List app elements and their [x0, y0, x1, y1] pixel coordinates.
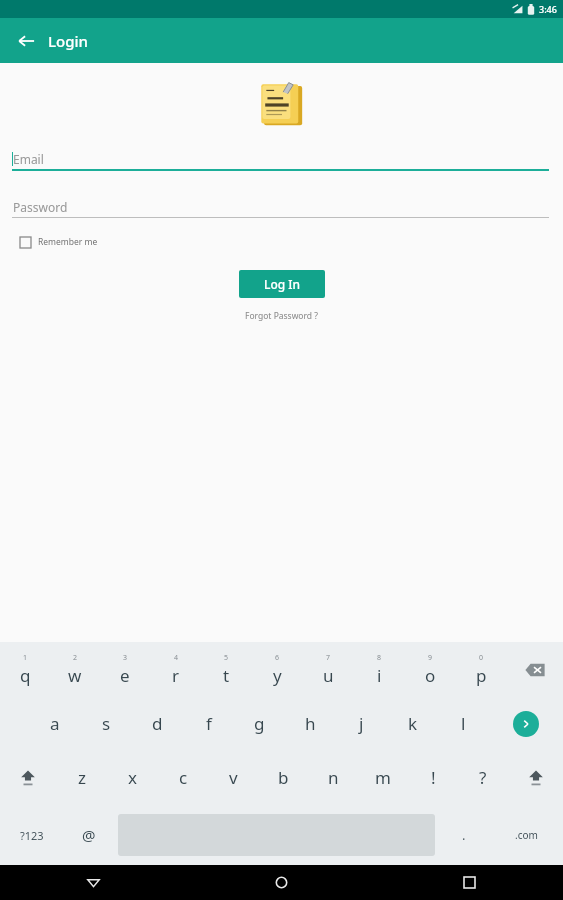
- button[interactable]: Backspace: [507, 642, 563, 697]
- staticText: ?: [479, 766, 487, 789]
- staticText: 7: [326, 653, 331, 663]
- staticText: z: [78, 766, 86, 789]
- staticText: a: [50, 712, 60, 735]
- staticText: .com: [515, 828, 538, 842]
- button[interactable]: .: [438, 805, 490, 865]
- staticText: 1: [23, 653, 28, 663]
- staticText: v: [229, 766, 238, 789]
- staticText: !: [431, 766, 436, 789]
- staticText: Log In: [264, 276, 301, 292]
- button[interactable]: .com: [490, 805, 563, 865]
- staticText: f: [206, 712, 212, 735]
- button[interactable]: x: [107, 750, 158, 805]
- button[interactable]: s: [81, 697, 132, 750]
- button[interactable]: k: [387, 697, 438, 750]
- button[interactable]: c: [158, 750, 208, 805]
- staticText: Forgot Password ?: [245, 310, 318, 322]
- staticText: 3: [123, 653, 128, 663]
- button[interactable]: 9: [405, 642, 456, 697]
- button[interactable]: 6: [252, 642, 303, 697]
- staticText: Remember me: [38, 236, 98, 248]
- button[interactable]: Recent apps: [375, 865, 563, 900]
- staticText: i: [377, 664, 382, 687]
- staticText: d: [152, 712, 163, 735]
- button[interactable]: d: [132, 697, 183, 750]
- staticText: b: [278, 766, 289, 789]
- staticText: 5: [224, 653, 229, 663]
- staticText: w: [68, 664, 82, 687]
- staticText: s: [102, 712, 111, 735]
- staticText: m: [375, 766, 391, 789]
- staticText: k: [408, 712, 418, 735]
- button[interactable]: Shift: [508, 750, 563, 805]
- button[interactable]: 3: [100, 642, 150, 697]
- staticText: l: [461, 712, 466, 735]
- staticText: q: [20, 664, 31, 687]
- button[interactable]: j: [336, 697, 387, 750]
- button[interactable]: h: [285, 697, 336, 750]
- staticText: 6: [275, 653, 280, 663]
- button[interactable]: Remember me: [20, 236, 98, 248]
- button[interactable]: ?: [458, 750, 508, 805]
- button[interactable]: ?123: [0, 805, 63, 865]
- staticText: c: [179, 766, 188, 789]
- button[interactable]: 8: [354, 642, 405, 697]
- button[interactable]: b: [258, 750, 308, 805]
- staticText: x: [128, 766, 137, 789]
- staticText: 2: [73, 653, 78, 663]
- button[interactable]: Next: [489, 697, 563, 750]
- staticText: r: [172, 664, 180, 687]
- staticText: 8: [377, 653, 382, 663]
- staticText: h: [305, 712, 316, 735]
- button[interactable]: Email: [12, 149, 549, 169]
- button[interactable]: Home: [187, 865, 375, 900]
- button[interactable]: @: [63, 805, 115, 865]
- staticText: .: [462, 826, 466, 844]
- staticText: g: [254, 712, 265, 735]
- button[interactable]: Shift: [0, 750, 56, 805]
- button[interactable]: 2: [50, 642, 100, 697]
- button[interactable]: Log In: [239, 270, 325, 298]
- staticText: Email: [13, 151, 44, 167]
- button[interactable]: a: [29, 697, 81, 750]
- staticText: e: [120, 664, 130, 687]
- button[interactable]: n: [308, 750, 358, 805]
- staticText: j: [359, 712, 364, 735]
- staticText: 9: [428, 653, 433, 663]
- staticText: p: [476, 664, 487, 687]
- staticText: 0: [479, 653, 484, 663]
- button[interactable]: v: [208, 750, 258, 805]
- button[interactable]: Forgot Password ?: [245, 310, 318, 322]
- staticText: y: [273, 664, 282, 687]
- button[interactable]: 4: [150, 642, 201, 697]
- button[interactable]: l: [438, 697, 489, 750]
- button[interactable]: z: [56, 750, 107, 805]
- staticText: Password: [13, 199, 68, 215]
- button[interactable]: 1: [0, 642, 50, 697]
- button[interactable]: Back: [8, 23, 44, 59]
- button[interactable]: 5: [201, 642, 252, 697]
- staticText: u: [323, 664, 334, 687]
- staticText: o: [425, 664, 436, 687]
- button[interactable]: m: [358, 750, 408, 805]
- button[interactable]: 0: [456, 642, 507, 697]
- button[interactable]: Back: [0, 865, 187, 900]
- staticText: ?123: [20, 828, 44, 843]
- button[interactable]: !: [408, 750, 458, 805]
- button[interactable]: 7: [303, 642, 354, 697]
- staticText: t: [223, 664, 230, 687]
- staticText: 4: [174, 653, 179, 663]
- button[interactable]: g: [234, 697, 285, 750]
- staticText: Login: [48, 31, 88, 51]
- staticText: n: [328, 766, 339, 789]
- staticText: 3:46: [539, 3, 557, 15]
- button[interactable]: Password: [13, 197, 549, 217]
- staticText: @: [82, 825, 96, 845]
- button[interactable]: f: [183, 697, 234, 750]
